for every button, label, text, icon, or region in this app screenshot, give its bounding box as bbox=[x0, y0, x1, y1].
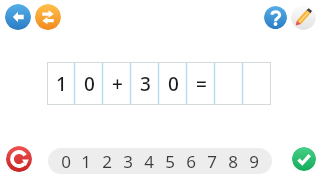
button[interactable]: Draw bbox=[291, 5, 316, 30]
button[interactable]: 3 bbox=[117, 148, 138, 174]
staticText: 5 bbox=[165, 150, 175, 173]
button[interactable]: Confirm bbox=[292, 147, 316, 171]
button[interactable]: 0 bbox=[56, 148, 76, 174]
button[interactable]: 7 bbox=[201, 148, 222, 174]
staticText: 1 bbox=[81, 150, 91, 173]
button[interactable]: 9 bbox=[243, 148, 264, 174]
button[interactable]: Back bbox=[5, 4, 31, 30]
button[interactable]: Swap bbox=[35, 4, 61, 30]
button[interactable]: 0 bbox=[75, 62, 103, 105]
staticText: 9 bbox=[249, 150, 259, 173]
staticText: 7 bbox=[207, 150, 217, 173]
staticText: = bbox=[196, 71, 207, 97]
button[interactable]: 2 bbox=[96, 148, 117, 174]
button[interactable]: 8 bbox=[222, 148, 243, 174]
button[interactable]: Reset bbox=[6, 146, 32, 172]
staticText: 3 bbox=[123, 150, 133, 173]
staticText: 4 bbox=[144, 150, 154, 173]
button[interactable]: 6 bbox=[180, 148, 201, 174]
button[interactable] bbox=[215, 62, 243, 105]
staticText: 0 bbox=[61, 150, 71, 173]
button[interactable]: 3 bbox=[131, 62, 159, 105]
button[interactable]: Help bbox=[264, 6, 287, 29]
staticText: 6 bbox=[186, 150, 196, 173]
button[interactable]: 4 bbox=[138, 148, 159, 174]
staticText: 0 bbox=[84, 71, 95, 97]
button[interactable]: 0 bbox=[48, 148, 272, 174]
staticText: 1 bbox=[56, 71, 67, 97]
button[interactable]: 0 bbox=[159, 62, 187, 105]
staticText: 0 bbox=[168, 71, 179, 97]
button[interactable]: 1 bbox=[47, 62, 75, 105]
button[interactable]: = bbox=[187, 62, 215, 105]
button[interactable]: + bbox=[103, 62, 131, 105]
button[interactable]: 1 bbox=[76, 148, 96, 174]
staticText: 3 bbox=[140, 71, 151, 97]
button[interactable]: 5 bbox=[159, 148, 180, 174]
staticText: + bbox=[112, 71, 123, 97]
staticText: 2 bbox=[102, 150, 112, 173]
button[interactable] bbox=[243, 62, 271, 105]
staticText: 8 bbox=[228, 150, 238, 173]
